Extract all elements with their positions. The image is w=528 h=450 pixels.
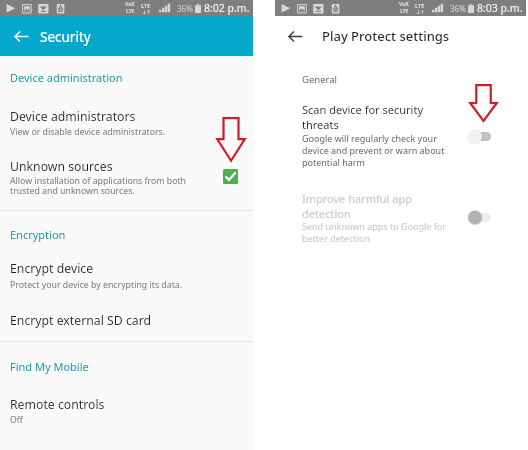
staticText: LTE [141, 2, 151, 9]
staticText: device and prevent or warn about [302, 144, 445, 156]
staticText: Allow installation of applications from … [10, 175, 187, 187]
staticText: Device administration [10, 70, 123, 85]
staticText: threats [302, 117, 339, 132]
button[interactable]: Encrypt external SD card [0, 307, 253, 331]
button[interactable]: Navigate up [280, 21, 310, 51]
staticText: Scan device for security [302, 102, 424, 117]
staticText: 36% [177, 3, 193, 14]
staticText: Remote controls [10, 396, 105, 413]
staticText: VoX [399, 1, 409, 8]
button[interactable]: Remote controls [0, 391, 253, 415]
staticText: Play Protect settings [322, 27, 450, 45]
staticText: Encrypt external SD card [10, 312, 151, 329]
staticText: Improve harmful app [302, 191, 412, 206]
staticText: View or disable device administrators. [10, 126, 166, 138]
button[interactable]: Navigate up [8, 23, 34, 49]
staticText: Device administrators [10, 108, 136, 125]
button[interactable]: Encrypt device [0, 255, 253, 279]
staticText: General [302, 73, 338, 86]
staticText: Encryption [10, 227, 66, 242]
staticText: LTE [415, 2, 425, 9]
staticText: VoX [125, 1, 135, 8]
staticText: 8:02 p.m. [204, 1, 250, 15]
staticText: Off [10, 414, 23, 426]
staticText: Send unknown apps to Google for [302, 220, 446, 232]
staticText: trusted and unknown sources. [10, 185, 135, 197]
staticText: 8:03 p.m. [477, 1, 523, 15]
staticText: potential harm [302, 156, 365, 168]
staticText: LTE [126, 8, 135, 15]
staticText: Unknown sources [10, 158, 113, 175]
button[interactable]: Improve harmful app detection toggle [467, 209, 493, 226]
staticText: ↓↑ [142, 9, 151, 15]
button[interactable]: Unknown sources [0, 153, 253, 177]
staticText: ↓↑ [416, 9, 425, 15]
staticText: better detection [302, 232, 371, 244]
staticText: detection [302, 206, 351, 221]
button[interactable]: Unknown sources enabled [223, 169, 238, 184]
staticText: Encrypt device [10, 260, 94, 277]
staticText: LTE [400, 8, 409, 15]
staticText: Find My Mobile [10, 359, 89, 374]
staticText: Google will regularly check your [302, 132, 437, 144]
staticText: Security [40, 28, 91, 46]
staticText: 36% [450, 3, 466, 14]
button[interactable]: Device administrators [0, 103, 253, 127]
staticText: Protect your device by encrypting its da… [10, 279, 183, 291]
button[interactable]: Scan device for security threats toggle [467, 128, 493, 145]
